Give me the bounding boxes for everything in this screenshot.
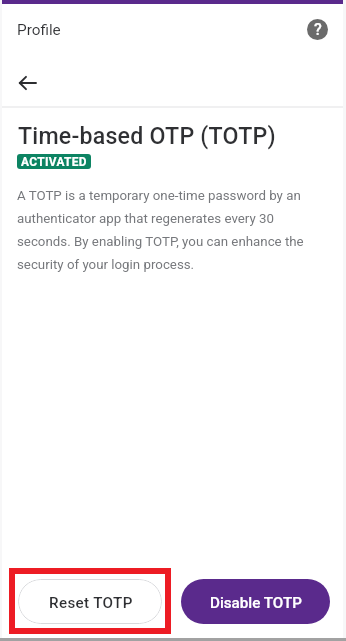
- button[interactable]: Help: [307, 19, 328, 40]
- staticText: ACTIVATED: [21, 155, 87, 169]
- button[interactable]: Reset TOTP: [18, 579, 162, 624]
- staticText: Reset TOTP: [49, 594, 133, 612]
- button[interactable]: Disable TOTP: [181, 579, 330, 624]
- staticText: Disable TOTP: [210, 594, 302, 612]
- staticText: ?: [314, 20, 322, 39]
- button[interactable]: Back: [14, 71, 38, 95]
- staticText: A TOTP is a temporary one-time password …: [17, 188, 325, 272]
- staticText: Profile: [17, 21, 61, 39]
- staticText: Time-based OTP (TOTP): [18, 122, 276, 149]
